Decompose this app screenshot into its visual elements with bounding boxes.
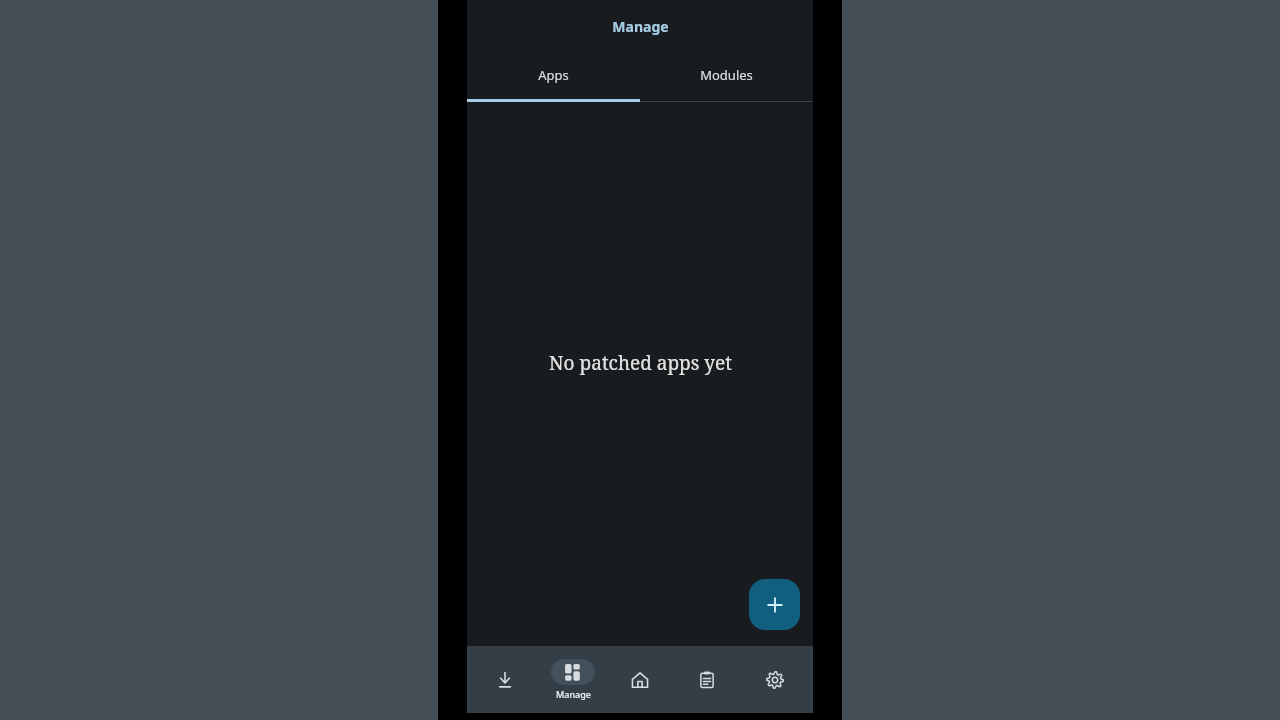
button[interactable]: Modules [640,53,813,102]
staticText: Modules [700,66,753,84]
staticText: Manage [556,688,591,700]
button[interactable]: Home [611,646,669,713]
staticText: Apps [538,66,569,84]
button[interactable]: Settings [746,646,804,713]
button[interactable]: Manage [544,646,602,713]
button[interactable]: Download [476,646,534,713]
button[interactable]: Clipboard [678,646,736,713]
button[interactable]: Add patched app [749,579,800,630]
staticText: Manage [612,17,669,36]
button[interactable]: Apps [467,53,640,102]
staticText: No patched apps yet [549,350,732,376]
